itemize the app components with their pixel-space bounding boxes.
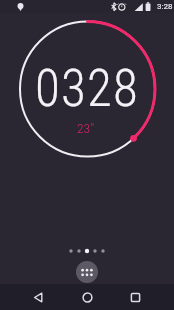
button[interactable]: [114, 284, 157, 310]
staticText: 23": [77, 120, 95, 136]
button[interactable]: [76, 261, 98, 283]
staticText: 3:28: [157, 2, 173, 11]
button[interactable]: [65, 284, 109, 310]
button[interactable]: 0328: [7, 9, 168, 169]
button[interactable]: [17, 284, 60, 310]
staticText: 0328: [35, 59, 140, 119]
